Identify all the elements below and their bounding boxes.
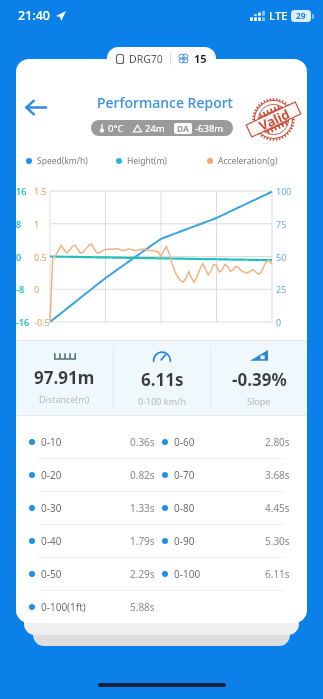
staticText: 0 — [34, 283, 40, 295]
button[interactable]: DRG70 — [107, 47, 216, 70]
staticText: 0 — [16, 251, 22, 263]
button[interactable]: 97.91m — [16, 341, 113, 415]
staticText: Slope — [247, 395, 271, 407]
staticText: 1.5 — [34, 185, 47, 197]
button[interactable]: -0.39% — [211, 341, 307, 415]
button[interactable]: 0-60 — [162, 426, 307, 458]
staticText: 0-100(1ft) — [41, 600, 86, 614]
staticText: 0-30 — [41, 501, 62, 515]
staticText: 2.80s — [265, 435, 290, 449]
staticText: 0-10 — [41, 435, 62, 449]
staticText: 0-20 — [41, 468, 62, 482]
staticText: Height(m) — [127, 155, 167, 167]
button[interactable]: 6.11s — [114, 341, 210, 415]
button[interactable]: 0-90 — [162, 525, 307, 557]
button[interactable] — [162, 591, 307, 623]
staticText: Acceleration(g) — [218, 155, 278, 167]
staticText: 0-90 — [174, 534, 195, 548]
button[interactable]: 0-10 — [16, 426, 162, 458]
staticText: 0.5 — [34, 251, 47, 263]
staticText: 0 — [276, 316, 282, 328]
button[interactable]: 0-100 — [162, 558, 307, 590]
staticText: 2.29s — [130, 567, 155, 581]
staticText: 5.88s — [130, 600, 155, 614]
button[interactable]: 0-40 — [16, 525, 162, 557]
staticText: -0.5 — [34, 316, 50, 328]
staticText: 0.82s — [130, 468, 155, 482]
staticText: -16 — [16, 316, 30, 328]
button[interactable]: Back — [21, 93, 49, 121]
staticText: 97.91m — [34, 366, 95, 389]
staticText: 1 — [34, 218, 40, 230]
staticText: 6.11s — [265, 567, 290, 581]
staticText: 21:40 — [18, 7, 51, 24]
button[interactable]: 0-20 — [16, 459, 162, 491]
staticText: 0°C — [108, 122, 124, 135]
staticText: 0-60 — [174, 435, 195, 449]
staticText: 4.45s — [265, 501, 290, 515]
staticText: LTE — [269, 8, 288, 24]
staticText: -638m — [195, 122, 224, 135]
staticText: 50 — [276, 251, 287, 263]
staticText: DRG70 — [129, 52, 163, 66]
staticText: -8 — [16, 283, 25, 295]
button[interactable]: 0-80 — [162, 492, 307, 524]
staticText: 0-80 — [174, 501, 195, 515]
staticText: 16 — [16, 185, 27, 197]
staticText: 75 — [276, 218, 287, 230]
staticText: Performance Report — [97, 93, 233, 112]
staticText: 1.79s — [130, 534, 155, 548]
staticText: 15 — [194, 51, 207, 66]
staticText: 1.33s — [130, 501, 155, 515]
staticText: 0.36s — [130, 435, 155, 449]
staticText: 0-100 — [174, 567, 201, 581]
button[interactable]: 0-50 — [16, 558, 162, 590]
staticText: 5.30s — [265, 534, 290, 548]
staticText: 0-40 — [41, 534, 62, 548]
staticText: 8 — [16, 218, 22, 230]
staticText: 25 — [276, 283, 287, 295]
button[interactable]: 0-100(1ft) — [16, 591, 162, 623]
staticText: Distance(m) — [39, 393, 90, 405]
staticText: 3.68s — [265, 468, 290, 482]
staticText: 29 — [296, 10, 306, 22]
button[interactable]: 0-30 — [16, 492, 162, 524]
staticText: 6.11s — [141, 368, 184, 391]
staticText: 0-70 — [174, 468, 195, 482]
button[interactable]: 0-70 — [162, 459, 307, 491]
staticText: Speed(km/h) — [37, 155, 88, 167]
staticText: 0-50 — [41, 567, 62, 581]
staticText: Valid — [256, 105, 292, 135]
staticText: 100 — [276, 185, 292, 197]
staticText: 24m — [145, 122, 165, 135]
staticText: 0-100 km/h — [138, 395, 186, 407]
staticText: -0.39% — [232, 368, 287, 391]
staticText: DA — [177, 123, 189, 134]
